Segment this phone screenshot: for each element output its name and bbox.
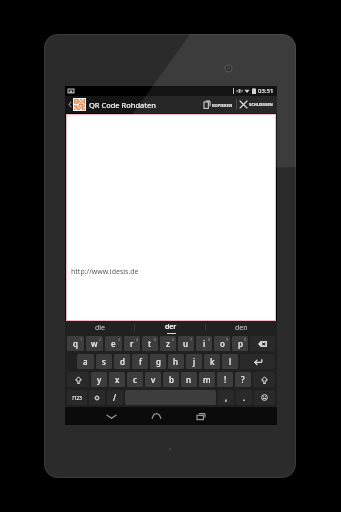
button[interactable]: Emoji	[254, 390, 275, 405]
staticText: ?123	[72, 395, 82, 401]
button[interactable]: v	[145, 372, 161, 387]
button[interactable]: 6	[160, 336, 176, 351]
button[interactable]: n	[181, 372, 197, 387]
button[interactable]: 4	[124, 336, 140, 351]
button[interactable]: die	[65, 321, 135, 334]
button[interactable]: Hide keyboard	[97, 407, 125, 425]
button[interactable]: j	[186, 354, 202, 369]
button[interactable]: Recent apps	[187, 407, 215, 425]
staticText: g	[156, 356, 161, 367]
button[interactable]: f	[132, 354, 148, 369]
button[interactable]: !	[217, 372, 233, 387]
button[interactable]: m	[199, 372, 215, 387]
button[interactable]: b	[163, 372, 179, 387]
button[interactable]: 0	[232, 336, 248, 351]
staticText: v	[151, 374, 156, 385]
staticText: i	[203, 338, 206, 349]
staticText: 5	[154, 337, 157, 342]
staticText: 6	[172, 337, 175, 342]
staticText: p	[238, 338, 243, 349]
button[interactable]: .	[236, 390, 252, 405]
button[interactable]: 2	[86, 336, 103, 351]
staticText: 4	[136, 337, 139, 342]
staticText: q	[73, 338, 78, 349]
staticText: n	[186, 374, 192, 385]
staticText: w	[91, 338, 98, 349]
button[interactable]: der	[135, 321, 206, 334]
staticText: http://www.idesis.de	[71, 267, 139, 277]
staticText: 3	[118, 337, 121, 342]
staticText: l	[229, 356, 232, 367]
staticText: den	[235, 323, 248, 333]
staticText: 03:51	[258, 87, 274, 95]
button[interactable]: SCHLIESSEN	[237, 99, 274, 110]
button[interactable]: Input settings	[89, 390, 105, 405]
button[interactable]: 1	[67, 336, 84, 351]
staticText: 8	[208, 337, 211, 342]
button[interactable]: y	[91, 372, 107, 387]
staticText: z	[166, 338, 170, 349]
button[interactable]: l	[222, 354, 238, 369]
staticText: d	[120, 356, 125, 367]
button[interactable]: c	[127, 372, 143, 387]
staticText: u	[183, 338, 189, 349]
button[interactable]: Home	[142, 407, 170, 425]
button[interactable]: 9	[214, 336, 230, 351]
staticText: /	[113, 392, 117, 403]
button[interactable]: 7	[178, 336, 194, 351]
staticText: SCHLIESSEN	[249, 102, 273, 107]
staticText: 1	[80, 337, 83, 342]
button[interactable]: Enter	[240, 354, 275, 369]
staticText: h	[173, 356, 179, 367]
staticText: b	[169, 374, 174, 385]
staticText: 0	[244, 337, 247, 342]
button[interactable]: ,	[218, 390, 234, 405]
button[interactable]: Shift	[253, 372, 275, 387]
staticText: QR Code Rohdaten	[89, 100, 156, 110]
staticText: f	[139, 356, 142, 367]
button[interactable]: a	[77, 354, 94, 369]
staticText: r	[130, 338, 134, 349]
button[interactable]: k	[204, 354, 220, 369]
button[interactable]: den	[206, 321, 277, 334]
button[interactable]: g	[150, 354, 166, 369]
staticText: y	[97, 374, 102, 385]
button[interactable]: KOPIEREN	[201, 99, 236, 111]
staticText: 7	[190, 337, 193, 342]
button[interactable]: x	[109, 372, 125, 387]
staticText: 9	[226, 337, 229, 342]
staticText: 2	[99, 337, 102, 342]
button[interactable]: /	[107, 390, 123, 405]
staticText: ,	[225, 392, 228, 403]
button[interactable]: 5	[142, 336, 158, 351]
staticText: x	[115, 374, 120, 385]
staticText: o	[220, 338, 225, 349]
staticText: e	[111, 338, 116, 349]
staticText: t	[148, 338, 152, 349]
staticText: !	[224, 374, 227, 385]
button[interactable]: s	[96, 354, 112, 369]
button[interactable]: App icon	[74, 99, 85, 110]
staticText: KOPIEREN	[212, 103, 233, 108]
button[interactable]: Backspace	[250, 336, 275, 351]
staticText: a	[83, 356, 88, 367]
button[interactable]: 8	[196, 336, 212, 351]
staticText: j	[193, 356, 196, 367]
staticText: ?	[241, 374, 245, 385]
button[interactable]: Shift	[67, 372, 89, 387]
staticText: c	[133, 374, 137, 385]
staticText: der	[165, 322, 177, 332]
button[interactable]: d	[114, 354, 130, 369]
button[interactable]: http://www.idesis.de	[66, 114, 276, 321]
staticText: die	[95, 323, 106, 333]
staticText: m	[203, 374, 211, 385]
staticText: k	[210, 356, 215, 367]
button[interactable]: ?123	[67, 390, 87, 405]
staticText: .	[243, 392, 246, 403]
staticText: s	[102, 356, 106, 367]
button[interactable]: h	[168, 354, 184, 369]
button[interactable]: 3	[105, 336, 122, 351]
button[interactable]: ?	[235, 372, 251, 387]
